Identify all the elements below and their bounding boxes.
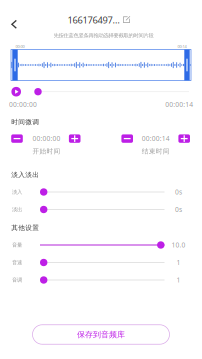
staticText: 其他设置 <box>11 224 39 232</box>
staticText: 时间微调 <box>11 118 39 126</box>
button[interactable]: Increase <box>178 134 191 144</box>
staticText: 淡出 <box>12 206 22 213</box>
button[interactable]: 保存到音频库 <box>32 325 169 344</box>
button[interactable]: Back <box>2 13 26 35</box>
staticText: 00:14 <box>177 44 186 49</box>
staticText: 淡入 <box>12 189 22 195</box>
staticText: 音速 <box>12 259 22 266</box>
button[interactable]: Increase <box>68 134 81 144</box>
staticText: 00:00:00 <box>32 134 60 143</box>
staticText: 开始时间 <box>32 147 60 155</box>
button[interactable]: Rename <box>123 16 130 24</box>
staticText: 166176497… <box>67 14 119 26</box>
button[interactable]: Decrease <box>10 134 23 144</box>
staticText: 1 <box>176 276 180 284</box>
staticText: 先按住蓝色竖条再拖动选择要截取的时间片段 <box>53 32 153 39</box>
staticText: 0s <box>175 188 182 196</box>
staticText: 00:00 <box>15 44 24 49</box>
staticText: 淡入淡出 <box>11 171 39 179</box>
staticText: 1 <box>176 258 180 267</box>
button[interactable]: Play <box>11 87 21 96</box>
button[interactable]: Decrease <box>121 134 134 144</box>
staticText: 00:00:14 <box>165 100 193 109</box>
staticText: 结束时间 <box>142 147 170 155</box>
staticText: 音调 <box>12 277 22 283</box>
staticText: 00:00:00 <box>9 100 37 109</box>
staticText: 00:00:14 <box>142 134 170 143</box>
staticText: 保存到音频库 <box>77 330 125 339</box>
staticText: 10.0 <box>171 241 185 249</box>
staticText: 0s <box>175 205 182 214</box>
staticText: 音量 <box>12 242 22 248</box>
